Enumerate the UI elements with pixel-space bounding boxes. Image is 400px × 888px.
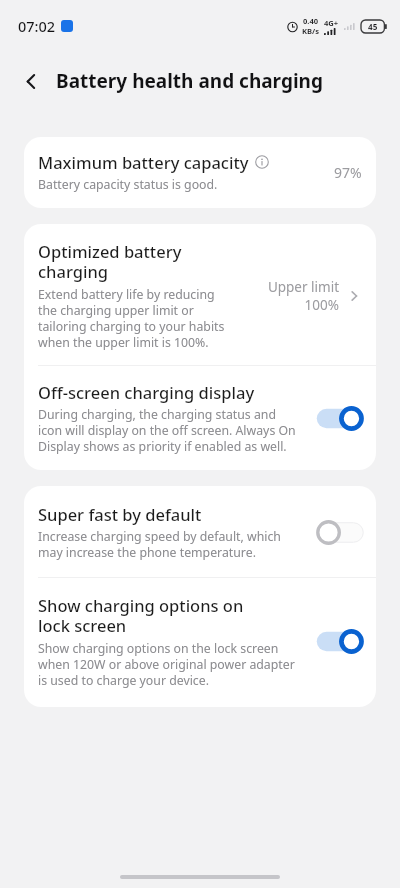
staticText: 0.40: [303, 16, 319, 26]
button[interactable]: Super fast by default: [24, 486, 376, 577]
button[interactable]: Show charging options on lock screen: [24, 578, 376, 707]
button[interactable]: Optimized battery charging settings: [341, 283, 367, 309]
staticText: 4G+: [324, 18, 339, 28]
staticText: KB/s: [302, 26, 320, 36]
button[interactable]: Super fast by default, off: [315, 519, 365, 546]
staticText: Show charging options on lock screen: [38, 594, 244, 637]
button[interactable]: Optimized battery charging: [24, 224, 376, 365]
staticText: 07:02: [18, 16, 56, 36]
staticText: 97%: [334, 163, 362, 182]
staticText: Battery capacity status is good.: [38, 176, 218, 193]
staticText: Optimized battery charging: [38, 240, 182, 283]
staticText: Show charging options on the lock screen…: [38, 640, 295, 689]
staticText: Super fast by default: [38, 503, 202, 525]
button[interactable]: Off-screen charging display, on: [315, 405, 365, 432]
staticText: Battery health and charging: [56, 68, 323, 94]
staticText: Extend battery life by reducing the char…: [38, 286, 225, 351]
button[interactable]: Back: [13, 63, 49, 99]
button[interactable]: Maximum battery capacity: [24, 137, 376, 208]
staticText: Maximum battery capacity: [38, 151, 249, 173]
button[interactable]: Show charging options on lock screen, on: [315, 628, 365, 655]
staticText: Upper limit 100%: [267, 278, 339, 314]
button[interactable]: Off-screen charging display: [24, 366, 376, 470]
staticText: Off-screen charging display: [38, 381, 255, 403]
staticText: During charging, the charging status and…: [38, 406, 296, 455]
staticText: 45: [368, 21, 378, 32]
staticText: Increase charging speed by default, whic…: [38, 528, 281, 561]
